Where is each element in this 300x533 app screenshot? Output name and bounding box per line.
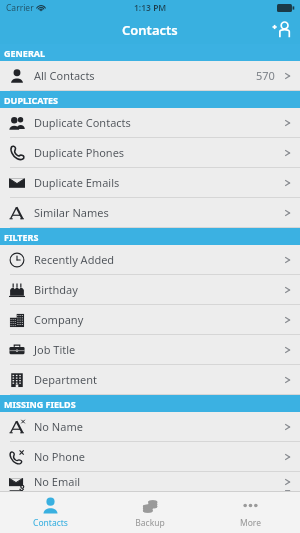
- button[interactable]: No Name: [0, 412, 300, 441]
- staticText: Similar Names: [34, 205, 109, 220]
- button[interactable]: Department: [0, 365, 300, 394]
- staticText: No Email: [34, 474, 81, 489]
- staticText: Company: [34, 312, 84, 327]
- staticText: Recently Added: [34, 252, 115, 267]
- staticText: Contacts: [33, 517, 68, 529]
- button[interactable]: More: [200, 492, 300, 533]
- button[interactable]: No Email: [0, 472, 300, 491]
- button[interactable]: Recently Added: [0, 245, 300, 274]
- staticText: Contacts: [122, 21, 178, 39]
- staticText: No Phone: [34, 449, 85, 464]
- staticText: 1:13 PM: [134, 2, 167, 14]
- staticText: FILTERS: [4, 231, 39, 243]
- staticText: More: [240, 517, 261, 529]
- button[interactable]: Similar Names: [0, 198, 300, 227]
- button[interactable]: Duplicate Phones: [0, 138, 300, 167]
- button[interactable]: Birthday: [0, 275, 300, 304]
- staticText: Duplicate Contacts: [34, 115, 131, 130]
- staticText: All Contacts: [34, 68, 95, 83]
- button[interactable]: Job Title: [0, 335, 300, 364]
- button[interactable]: Duplicate Emails: [0, 168, 300, 197]
- staticText: Carrier: [6, 2, 34, 14]
- staticText: Duplicate Emails: [34, 175, 120, 190]
- staticText: Job Title: [34, 342, 76, 357]
- staticText: Department: [34, 372, 97, 387]
- staticText: MISSING FIELDS: [4, 398, 76, 410]
- button[interactable]: Backup: [100, 492, 200, 533]
- staticText: Birthday: [34, 282, 78, 297]
- staticText: DUPLICATES: [4, 94, 59, 106]
- staticText: Duplicate Phones: [34, 145, 125, 160]
- button[interactable]: Add contact: [267, 16, 295, 44]
- staticText: 570: [256, 68, 275, 83]
- button[interactable]: All Contacts: [0, 61, 300, 90]
- button[interactable]: Duplicate Contacts: [0, 108, 300, 137]
- staticText: No Name: [34, 419, 83, 434]
- staticText: GENERAL: [4, 47, 46, 59]
- button[interactable]: No Phone: [0, 442, 300, 471]
- staticText: Backup: [135, 517, 165, 529]
- button[interactable]: Contacts: [0, 492, 100, 533]
- button[interactable]: Company: [0, 305, 300, 334]
